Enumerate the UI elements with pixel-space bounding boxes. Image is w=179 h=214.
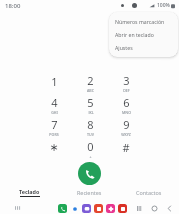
staticText: GHI bbox=[51, 110, 58, 114]
staticText: 6 bbox=[123, 95, 130, 110]
staticText: TUV bbox=[87, 132, 94, 136]
staticText: 1 bbox=[51, 74, 58, 89]
staticText: ABC bbox=[87, 88, 94, 92]
button[interactable]: ∗ bbox=[40, 139, 68, 158]
staticText: JKL bbox=[88, 110, 94, 114]
staticText: WXYZ bbox=[121, 132, 131, 136]
staticText: Ajustes bbox=[115, 44, 133, 51]
staticText: 3 bbox=[123, 73, 130, 88]
button[interactable]: 3 bbox=[112, 73, 140, 92]
staticText: Teclado bbox=[19, 188, 40, 195]
staticText: Abrir en teclado bbox=[115, 31, 154, 38]
staticText: 18:00 bbox=[5, 2, 21, 10]
staticText: 8 bbox=[87, 117, 94, 132]
button[interactable]: Atrás bbox=[165, 204, 173, 212]
button[interactable]: 9 bbox=[112, 117, 140, 136]
staticText: 2 bbox=[87, 73, 94, 88]
button[interactable]: 4 bbox=[40, 95, 68, 114]
staticText: Recientes bbox=[77, 189, 102, 196]
button[interactable]: Cámara bbox=[106, 204, 115, 213]
button[interactable]: 7 bbox=[40, 117, 68, 136]
button[interactable]: Recientes bbox=[135, 204, 143, 212]
staticText: DEF bbox=[123, 88, 130, 92]
button[interactable]: 8 bbox=[76, 117, 104, 136]
button[interactable]: Mensajes bbox=[82, 204, 91, 213]
button[interactable]: # bbox=[112, 139, 140, 158]
staticText: ∗ bbox=[49, 141, 59, 154]
staticText: MNO bbox=[122, 110, 131, 114]
staticText: 4 bbox=[51, 95, 58, 110]
button[interactable]: Llamar bbox=[78, 162, 101, 185]
button[interactable]: 2 bbox=[76, 73, 104, 92]
button[interactable]: 6 bbox=[112, 95, 140, 114]
staticText: + bbox=[89, 154, 92, 158]
button[interactable]: Inicio bbox=[150, 204, 158, 212]
staticText: 100% bbox=[157, 2, 170, 9]
button[interactable]: Aplicaciones bbox=[13, 203, 23, 213]
button[interactable]: Ajustes bbox=[109, 41, 178, 54]
staticText: 0 bbox=[87, 139, 94, 154]
button[interactable]: 1 bbox=[40, 73, 68, 92]
staticText: 9 bbox=[123, 117, 130, 132]
button[interactable]: Teclado bbox=[0, 185, 59, 199]
button[interactable]: Samsung Internet bbox=[70, 204, 79, 213]
button[interactable]: 5 bbox=[76, 95, 104, 114]
button[interactable]: 0 bbox=[76, 139, 104, 158]
button[interactable]: Recientes bbox=[59, 185, 119, 199]
staticText: PQRS bbox=[49, 132, 59, 136]
button[interactable]: Galería bbox=[94, 204, 103, 213]
staticText: Contactos bbox=[136, 189, 162, 196]
staticText: # bbox=[122, 140, 130, 155]
button[interactable]: Play bbox=[118, 204, 127, 213]
button[interactable]: Teléfono bbox=[58, 204, 67, 213]
staticText: 5 bbox=[87, 95, 94, 110]
button[interactable]: Números marcación rápida bbox=[109, 15, 178, 28]
staticText: 7 bbox=[51, 117, 58, 132]
button[interactable]: Contactos bbox=[119, 185, 179, 199]
staticText: Números marcación rápida bbox=[115, 18, 172, 25]
button[interactable]: Abrir en teclado bbox=[109, 28, 178, 41]
